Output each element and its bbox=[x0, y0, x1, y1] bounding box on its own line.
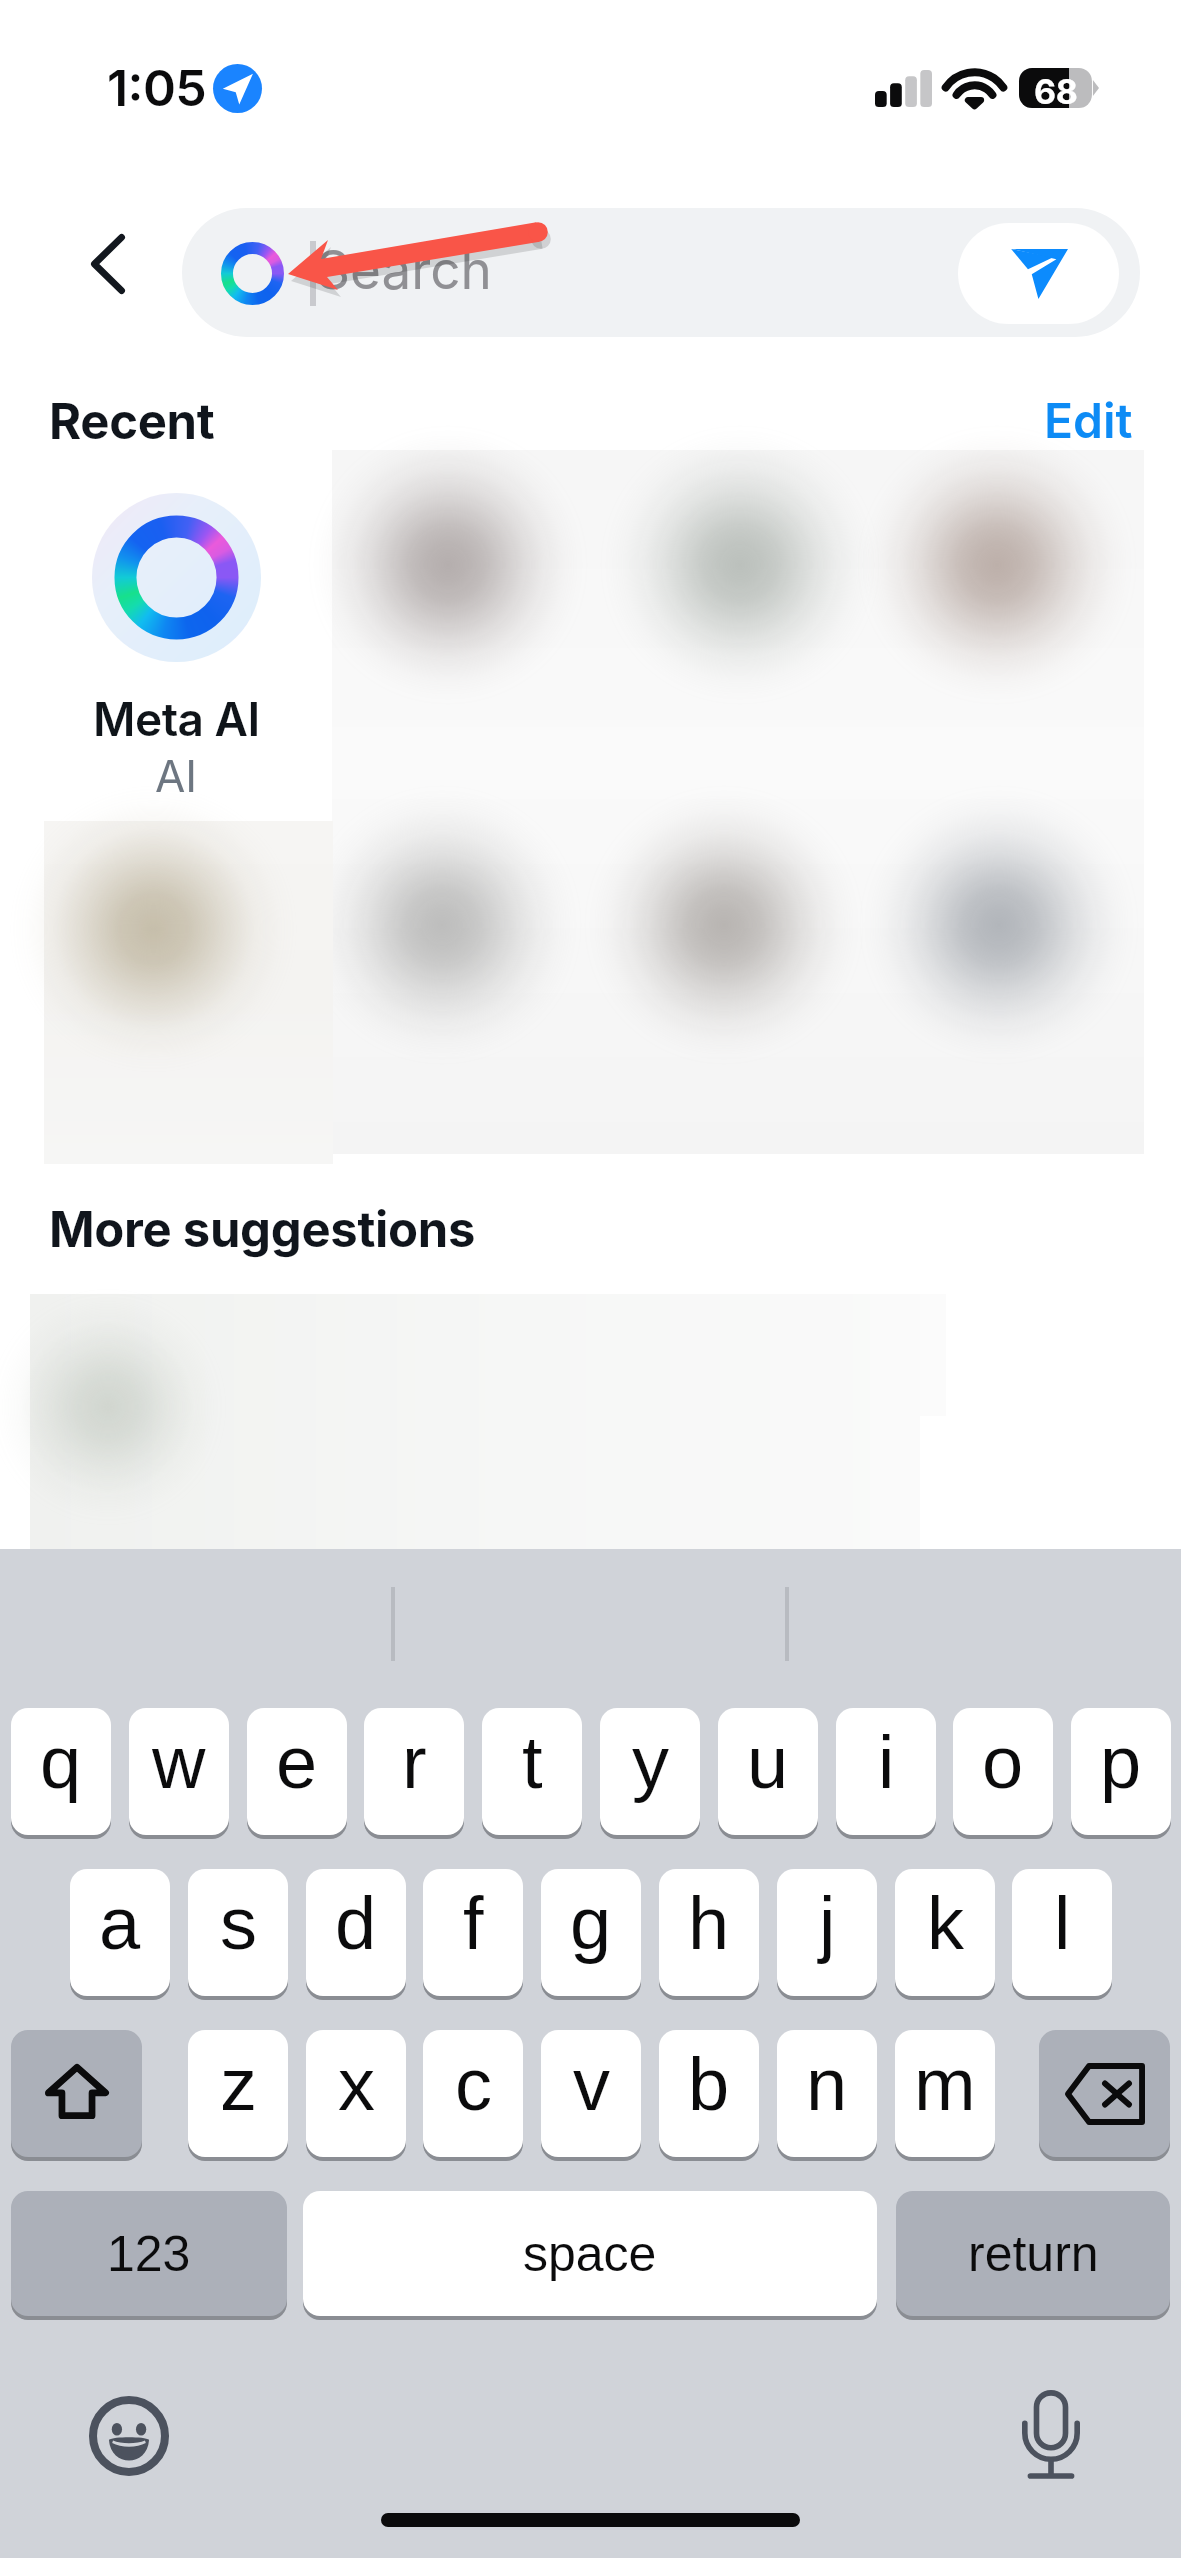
staticText: space bbox=[523, 2226, 657, 2282]
staticText: Recent bbox=[49, 392, 215, 451]
button[interactable]: b bbox=[659, 2030, 759, 2157]
staticText: 68 bbox=[1034, 71, 1078, 112]
button[interactable]: Dictation bbox=[1012, 2381, 1090, 2489]
button[interactable]: Backspace bbox=[1039, 2030, 1170, 2157]
button[interactable]: Edit bbox=[1036, 385, 1140, 455]
button[interactable]: s bbox=[188, 1869, 288, 1996]
button[interactable]: c bbox=[423, 2030, 523, 2157]
staticText: w bbox=[152, 1721, 206, 1804]
button[interactable]: Back bbox=[52, 208, 164, 320]
button[interactable]: a bbox=[70, 1869, 170, 1996]
button[interactable]: d bbox=[306, 1869, 406, 1996]
button[interactable]: Emoji keyboard bbox=[85, 2392, 173, 2480]
staticText: k bbox=[927, 1882, 964, 1965]
staticText: f bbox=[463, 1882, 484, 1965]
button[interactable]: Numbers bbox=[11, 2191, 287, 2316]
staticText: g bbox=[570, 1882, 612, 1965]
staticText: y bbox=[632, 1721, 669, 1804]
staticText: Edit bbox=[1044, 391, 1133, 449]
staticText: c bbox=[455, 2043, 492, 2126]
button[interactable]: space bbox=[303, 2191, 877, 2316]
staticText: e bbox=[276, 1721, 318, 1804]
button[interactable]: n bbox=[777, 2030, 877, 2157]
staticText: j bbox=[819, 1882, 836, 1965]
button[interactable]: l bbox=[1012, 1869, 1112, 1996]
button[interactable]: w bbox=[129, 1708, 229, 1835]
staticText: t bbox=[522, 1721, 543, 1804]
staticText: n bbox=[806, 2043, 848, 2126]
button[interactable]: h bbox=[659, 1869, 759, 1996]
button[interactable]: return bbox=[896, 2191, 1170, 2316]
button[interactable]: x bbox=[306, 2030, 406, 2157]
staticText: More suggestions bbox=[49, 1200, 476, 1259]
button[interactable]: k bbox=[895, 1869, 995, 1996]
button[interactable]: Shift bbox=[11, 2030, 142, 2157]
staticText: return bbox=[968, 2226, 1099, 2282]
staticText: o bbox=[982, 1721, 1024, 1804]
staticText: b bbox=[688, 2043, 730, 2126]
staticText: p bbox=[1100, 1721, 1142, 1804]
button[interactable]: j bbox=[777, 1869, 877, 1996]
staticText: s bbox=[220, 1882, 257, 1965]
button[interactable]: Send bbox=[958, 223, 1119, 324]
staticText: Search bbox=[316, 238, 492, 302]
button[interactable]: y bbox=[600, 1708, 700, 1835]
staticText: h bbox=[688, 1882, 730, 1965]
button[interactable]: v bbox=[541, 2030, 641, 2157]
button[interactable]: Search bbox=[182, 208, 1140, 337]
staticText: l bbox=[1054, 1882, 1071, 1965]
button[interactable]: t bbox=[482, 1708, 582, 1835]
staticText: a bbox=[99, 1882, 141, 1965]
staticText: 123 bbox=[107, 2226, 191, 2282]
button[interactable]: u bbox=[718, 1708, 818, 1835]
button[interactable]: f bbox=[423, 1869, 523, 1996]
staticText: q bbox=[40, 1721, 82, 1804]
staticText: v bbox=[573, 2043, 610, 2126]
staticText: z bbox=[220, 2043, 257, 2126]
button[interactable]: e bbox=[247, 1708, 347, 1835]
button[interactable]: Meta AI bbox=[32, 450, 320, 802]
staticText: AI bbox=[155, 749, 198, 802]
staticText: d bbox=[335, 1882, 377, 1965]
staticText: 1:05 bbox=[107, 58, 207, 118]
staticText: u bbox=[747, 1721, 789, 1804]
button[interactable]: p bbox=[1071, 1708, 1171, 1835]
staticText: m bbox=[914, 2043, 976, 2126]
staticText: x bbox=[338, 2043, 375, 2126]
button[interactable]: o bbox=[953, 1708, 1053, 1835]
staticText: r bbox=[402, 1721, 427, 1804]
button[interactable]: q bbox=[11, 1708, 111, 1835]
button[interactable]: i bbox=[836, 1708, 936, 1835]
button[interactable]: r bbox=[364, 1708, 464, 1835]
button[interactable]: m bbox=[895, 2030, 995, 2157]
button[interactable]: g bbox=[541, 1869, 641, 1996]
staticText: i bbox=[878, 1721, 895, 1804]
staticText: Meta AI bbox=[93, 691, 260, 747]
button[interactable]: z bbox=[188, 2030, 288, 2157]
